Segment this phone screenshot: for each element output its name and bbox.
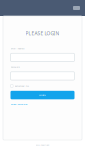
staticText: Forgot Password?: [10, 103, 27, 105]
button[interactable]: LOGIN: [10, 91, 74, 99]
button[interactable]: Forgot Password?: [10, 103, 74, 105]
button[interactable]: Battery: [72, 5, 81, 11]
staticText: Remember me: [15, 85, 29, 87]
button[interactable]: Remember me: [10, 85, 74, 87]
staticText: PLEASE LOGIN: [25, 30, 59, 36]
staticText: 2016 Copyright: [35, 143, 49, 146]
staticText: Email Address: [10, 47, 24, 50]
staticText: Password: [10, 66, 19, 68]
staticText: LOGIN: [39, 94, 46, 96]
